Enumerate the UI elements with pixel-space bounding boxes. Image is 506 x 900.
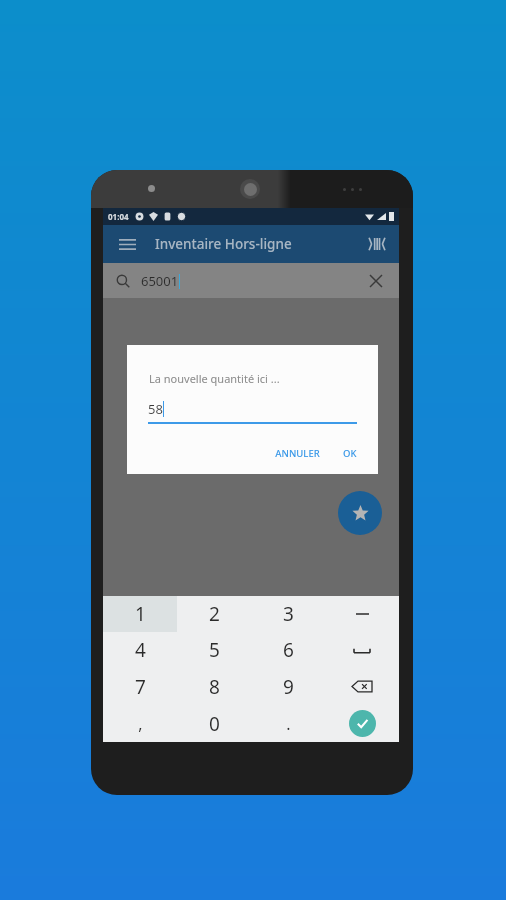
button[interactable]: 7 <box>103 668 177 705</box>
staticText: 2 <box>209 601 220 627</box>
staticText: 7 <box>135 674 146 700</box>
staticText: 4 <box>135 637 146 663</box>
button[interactable]: 65001 <box>103 263 399 298</box>
button[interactable]: 6 <box>251 632 325 668</box>
staticText: . <box>286 713 291 735</box>
button[interactable]: 4 <box>103 632 177 668</box>
staticText: 8 <box>209 674 220 700</box>
staticText: 65001 <box>141 272 179 290</box>
button[interactable]: 5 <box>177 632 251 668</box>
button[interactable]: Menu <box>111 228 143 260</box>
staticText: La nouvelle quantité ici ... <box>149 371 280 386</box>
button[interactable]: 0 <box>177 705 251 742</box>
button[interactable]: Valider <box>325 705 399 742</box>
button[interactable]: , <box>103 705 177 742</box>
staticText: 01:04 <box>108 211 129 222</box>
button[interactable]: Effacer <box>363 268 389 294</box>
button[interactable]: OK <box>333 441 367 465</box>
staticText: 0 <box>209 711 220 737</box>
button[interactable]: Tiret <box>325 596 399 632</box>
button[interactable]: 9 <box>251 668 325 705</box>
button[interactable]: 2 <box>177 596 251 632</box>
button[interactable]: 1 <box>103 596 177 632</box>
button[interactable]: Scanner <box>361 228 393 260</box>
button[interactable]: Favoris <box>338 491 382 535</box>
staticText: , <box>138 713 143 735</box>
button[interactable]: 3 <box>251 596 325 632</box>
staticText: 1 <box>135 601 146 627</box>
staticText: 9 <box>283 674 294 700</box>
staticText: 5 <box>209 637 220 663</box>
staticText: 58 <box>148 400 163 418</box>
button[interactable]: 8 <box>177 668 251 705</box>
staticText: 6 <box>283 637 294 663</box>
staticText: Inventaire Hors-ligne <box>155 235 292 253</box>
button[interactable]: Retour arrière <box>325 668 399 705</box>
button[interactable]: . <box>251 705 325 742</box>
button[interactable]: ANNULER <box>267 441 327 465</box>
button[interactable]: Espace <box>325 632 399 668</box>
staticText: OK <box>343 447 357 460</box>
staticText: ANNULER <box>275 447 320 460</box>
staticText: 3 <box>283 601 294 627</box>
